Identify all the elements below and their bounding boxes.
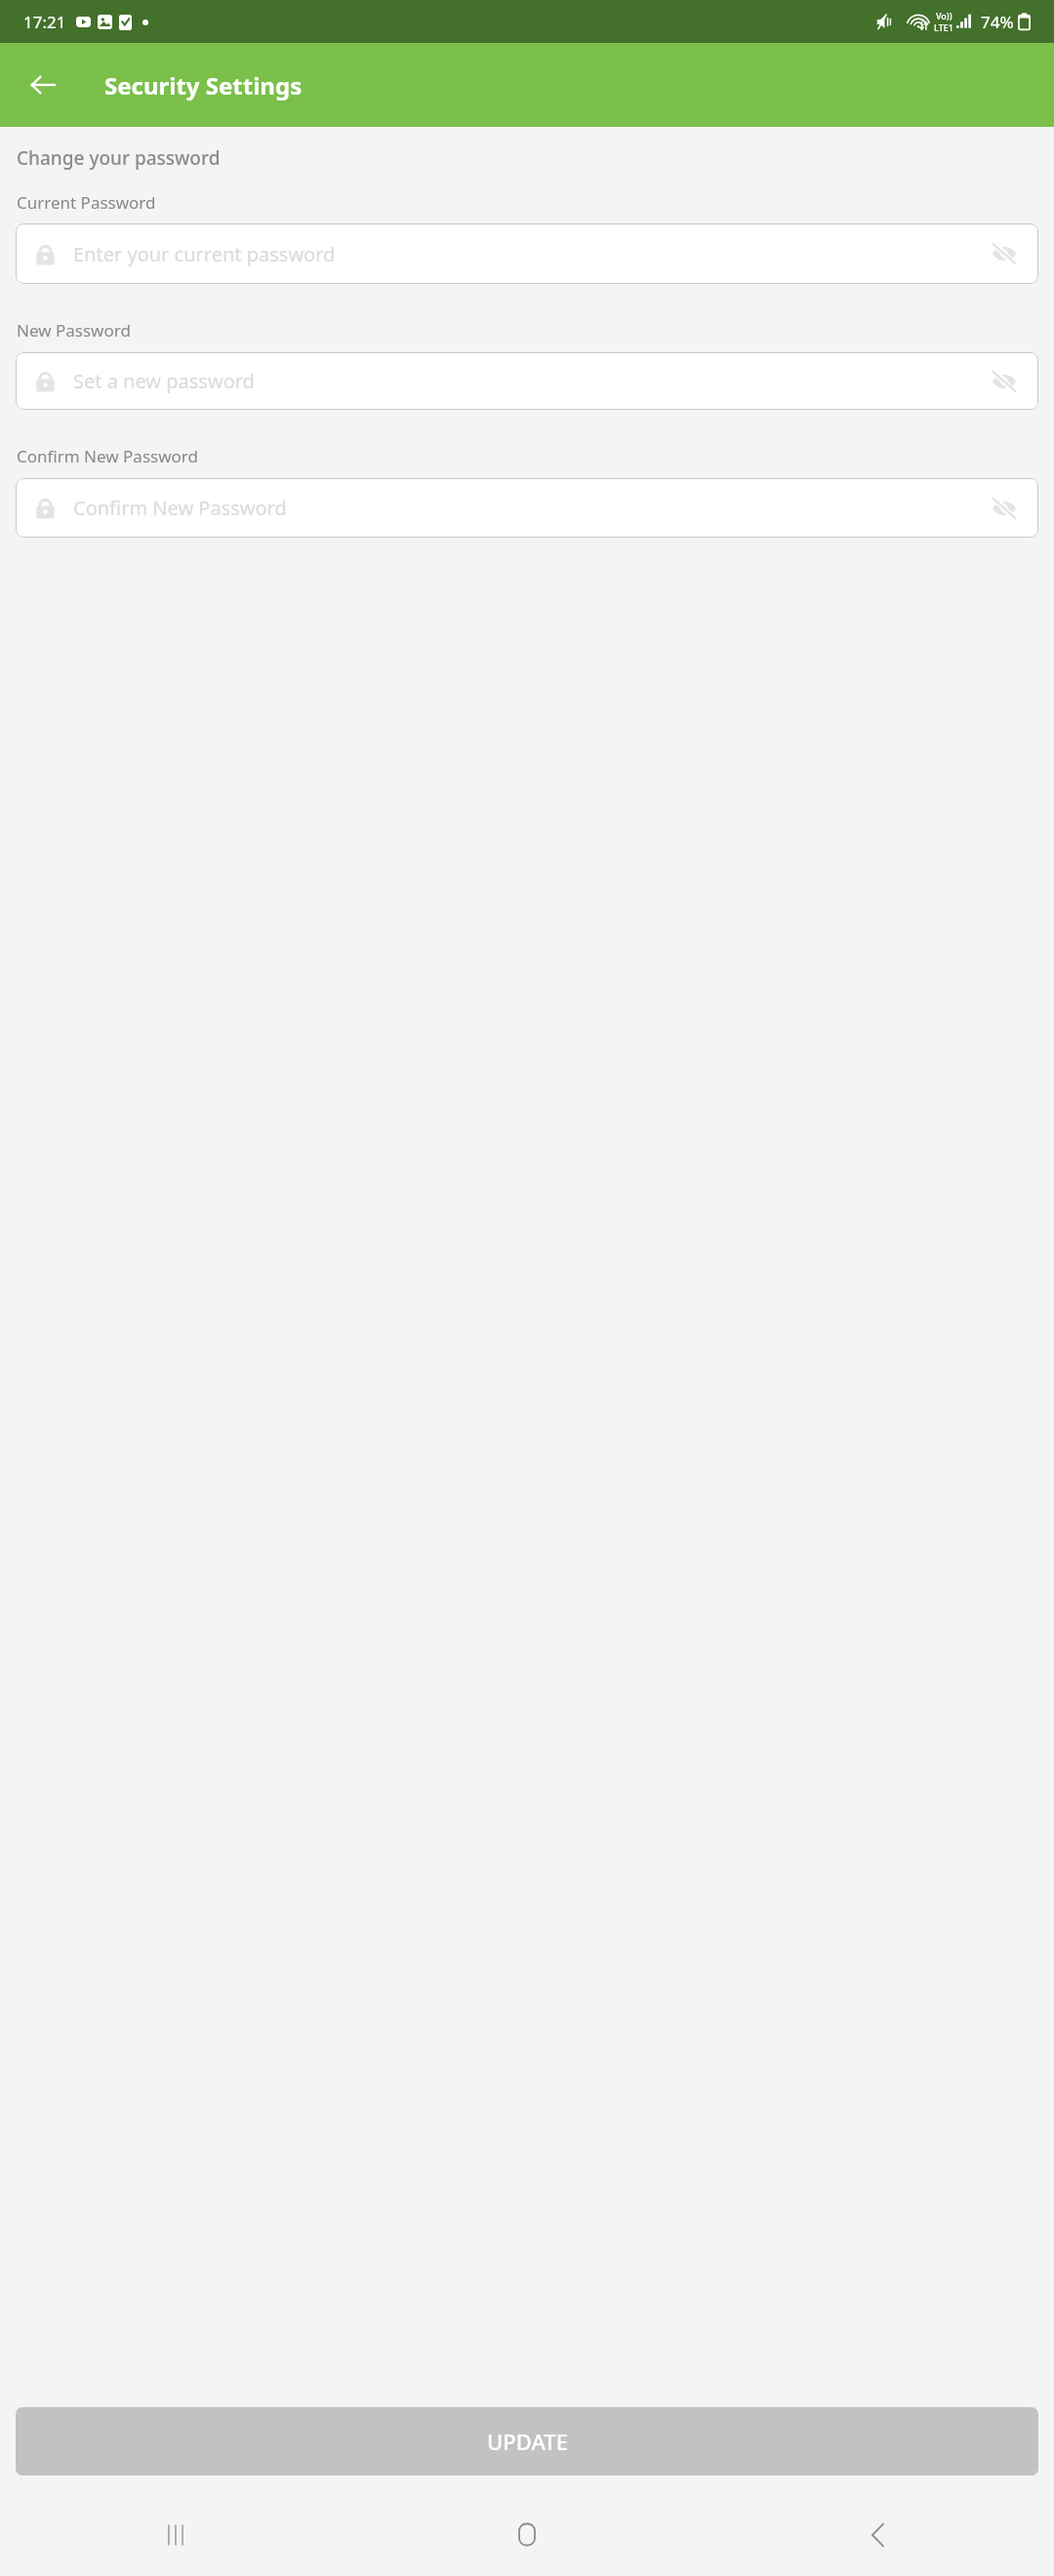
button[interactable]: Recents [0,2493,351,2576]
button[interactable]: Toggle password visibility [990,239,1019,268]
button[interactable]: Confirm New Password [16,478,1038,538]
staticText: UPDATE [487,2427,568,2456]
staticText: 17:21 [23,11,66,33]
button[interactable]: Back [703,2493,1054,2576]
staticText: Vo)) [936,10,953,21]
button[interactable]: Set a new password [16,352,1038,410]
button[interactable]: Toggle password visibility [990,367,1019,396]
staticText: Enter your current password [73,241,990,267]
button[interactable]: Enter your current password [16,223,1038,284]
button[interactable]: Back [20,62,65,107]
button[interactable]: UPDATE [16,2407,1038,2475]
staticText: Confirm New Password [17,445,198,467]
button[interactable]: Toggle password visibility [990,494,1019,523]
staticText: New Password [17,319,131,342]
staticText: Change your password [17,145,221,171]
staticText: Confirm New Password [73,495,990,521]
staticText: LTE1 [934,21,953,33]
staticText: Set a new password [73,368,990,394]
staticText: Current Password [17,191,156,214]
staticText: Security Settings [104,69,303,101]
staticText: 74% [981,11,1014,33]
button[interactable]: Home [351,2493,703,2576]
